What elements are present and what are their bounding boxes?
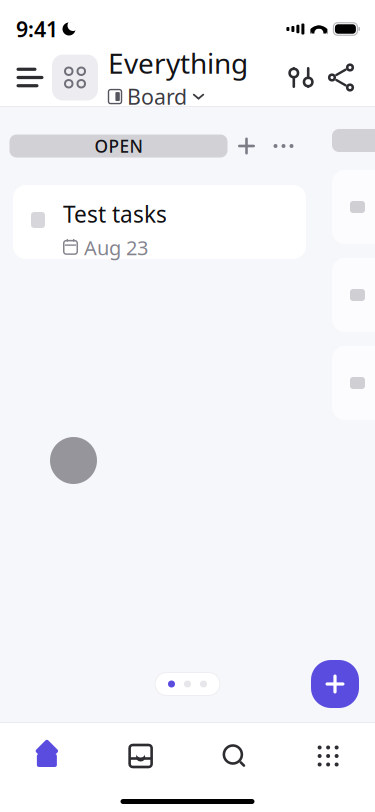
button[interactable]: Create task <box>311 660 359 708</box>
staticText: Test tasks <box>63 199 167 229</box>
staticText: 9:41 <box>16 15 58 43</box>
staticText: Aug 23 <box>84 234 148 261</box>
staticText: Everything <box>108 44 248 81</box>
button[interactable]: Search <box>187 730 281 782</box>
button[interactable]: Everything <box>52 44 248 111</box>
button[interactable]: Menu <box>8 55 52 99</box>
button[interactable]: OPEN <box>9 134 227 157</box>
button[interactable]: Add task to Open <box>227 129 265 163</box>
button[interactable]: Home <box>0 730 94 782</box>
button[interactable]: Column options <box>265 129 301 163</box>
button[interactable]: Test tasks <box>13 185 306 259</box>
button[interactable]: Inbox <box>94 730 188 782</box>
staticText: Board <box>127 82 187 111</box>
button[interactable]: More <box>281 730 375 782</box>
button[interactable]: Share <box>321 55 361 99</box>
button[interactable]: Filters <box>281 55 321 99</box>
staticText: OPEN <box>94 134 142 157</box>
